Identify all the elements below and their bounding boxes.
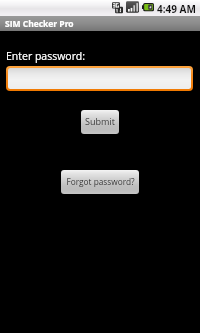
staticText: Submit [85,115,115,127]
staticText: Forgot password? [66,176,135,187]
button[interactable]: Forgot password? [61,170,139,194]
staticText: Enter password: [6,49,86,63]
staticText: SIM Checker Pro [5,18,74,30]
staticText: 4:49 AM [157,2,196,16]
button[interactable]: Submit [81,110,119,134]
button[interactable] [8,68,191,89]
